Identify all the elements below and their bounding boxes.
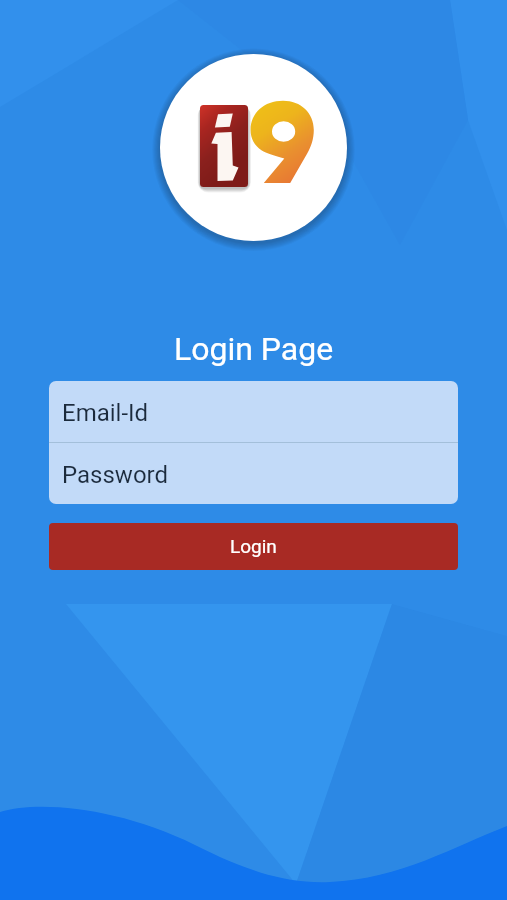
staticText: Email-Id (62, 399, 149, 427)
button[interactable]: Password (49, 443, 458, 504)
staticText: Login Page (174, 330, 334, 368)
staticText: Login (230, 535, 277, 557)
button[interactable]: Login (49, 523, 458, 570)
button[interactable]: Email-Id (49, 381, 458, 442)
staticText: Password (62, 461, 169, 489)
